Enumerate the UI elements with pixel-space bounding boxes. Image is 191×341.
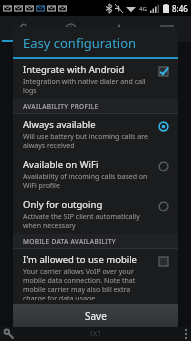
staticText: MOBILE DATA AVAILABILITY [23, 237, 116, 246]
staticText: 1X1 [89, 329, 102, 339]
staticText: Available on WiFi [23, 158, 99, 171]
staticText: Your carrier allows VoIP over your mobil… [23, 267, 151, 300]
button[interactable]: I'm allowed to use mobile [13, 249, 178, 304]
staticText: Integrate with Android [23, 63, 125, 76]
staticText: I'm allowed to use mobile [23, 253, 137, 266]
button[interactable]: Always available [13, 114, 178, 154]
staticText: 4G [139, 5, 147, 13]
staticText: AVAILABILITY PROFILE [23, 102, 99, 111]
button[interactable]: Only for outgoing [13, 194, 178, 234]
staticText: Save [85, 309, 107, 323]
staticText: Availability of incoming calls based on … [23, 172, 151, 190]
button[interactable]: Save [13, 305, 178, 327]
staticText: Activate the SIP client automatically wh… [23, 212, 151, 230]
button[interactable]: Available on WiFi [13, 154, 178, 194]
button[interactable]: Integrate with Android [13, 59, 178, 99]
staticText: Will use battery but incoming calls are … [23, 132, 151, 150]
staticText: Integration with native dialer and call … [23, 77, 151, 95]
staticText: Easy configuration [23, 34, 137, 52]
staticText: Always available [23, 118, 96, 131]
staticText: Only for outgoing [23, 198, 103, 211]
staticText: 8:46 [172, 3, 188, 14]
